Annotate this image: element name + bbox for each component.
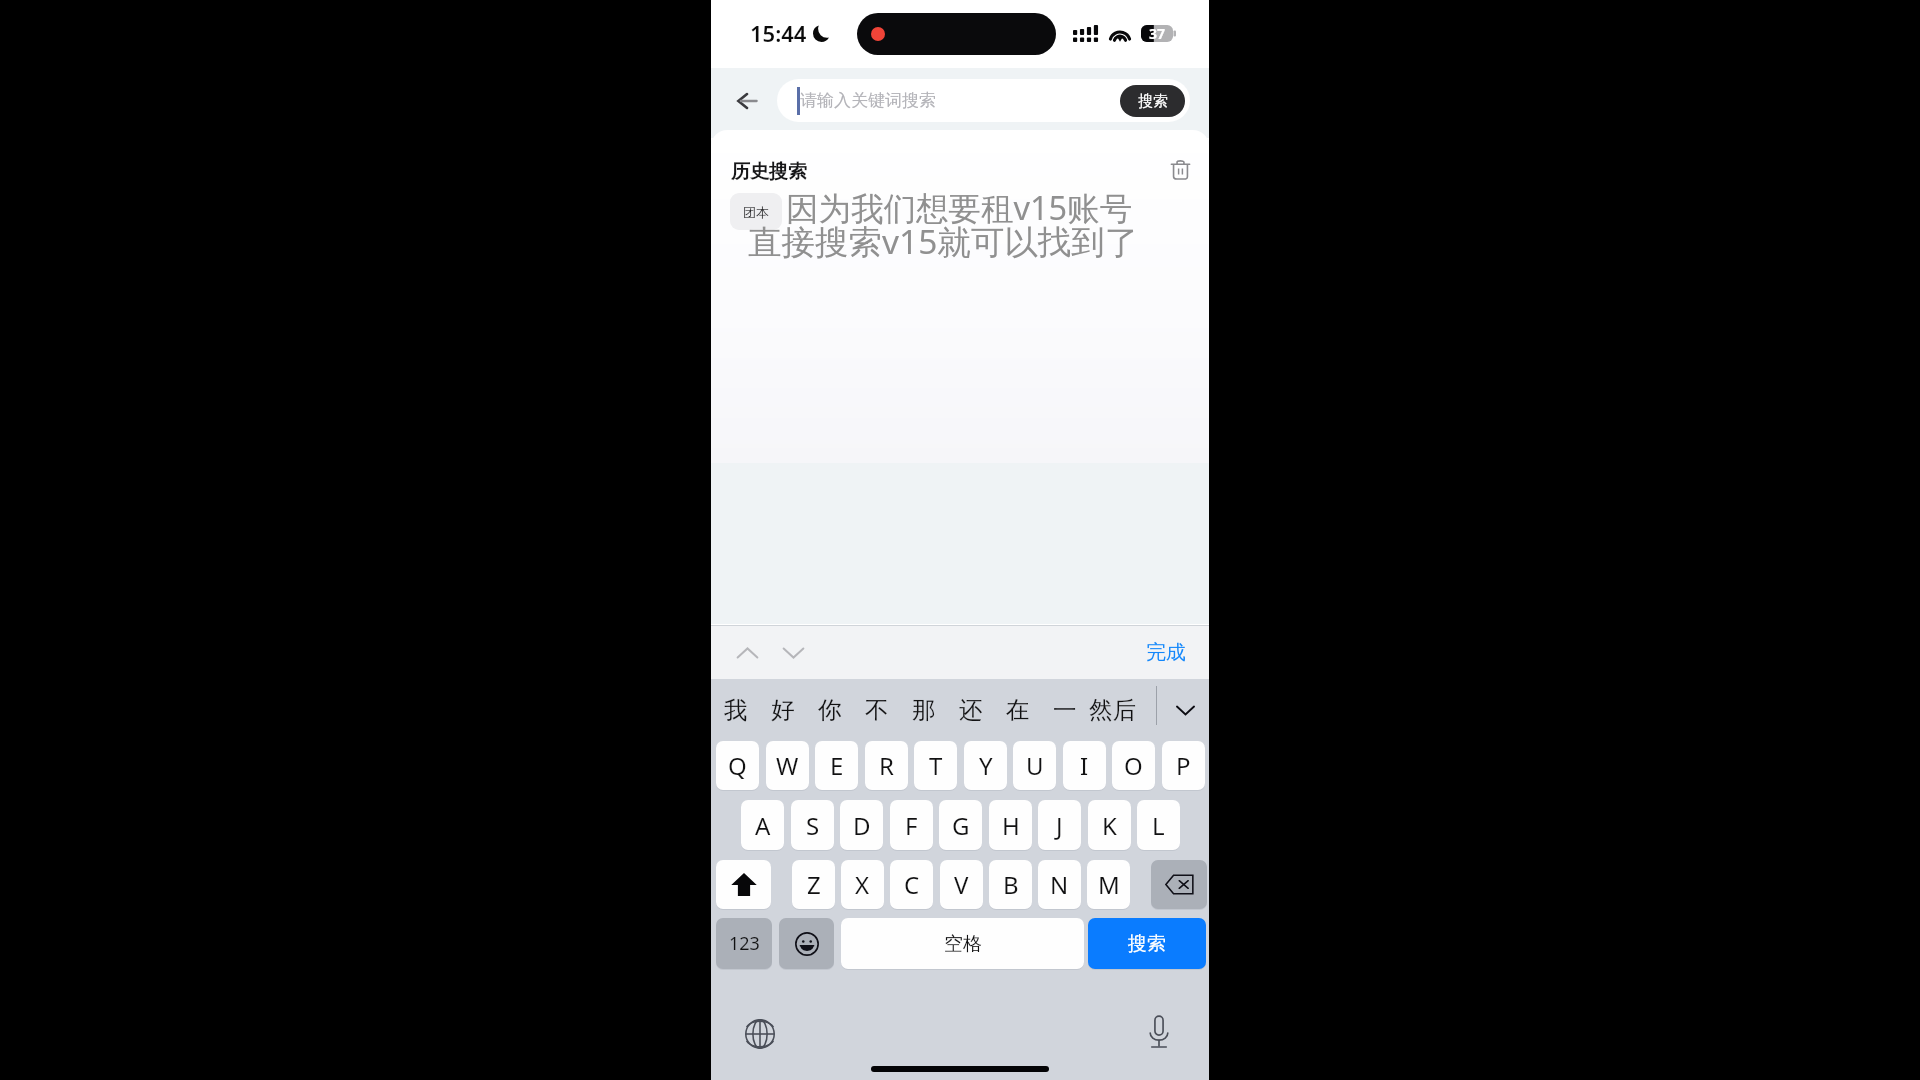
staticText: L — [1152, 809, 1165, 842]
staticText: 历史搜索 — [731, 160, 807, 184]
button[interactable]: Expand candidates — [1163, 679, 1207, 741]
staticText: Y — [979, 749, 993, 782]
staticText: S — [806, 809, 820, 842]
staticText: 一 — [1053, 695, 1077, 725]
button[interactable]: R — [865, 741, 908, 790]
staticText: 直接搜索v15就可以找到了 — [748, 218, 1139, 264]
button[interactable]: O — [1112, 741, 1155, 790]
button[interactable]: M — [1087, 860, 1130, 909]
button[interactable]: Z — [792, 860, 835, 909]
staticText: K — [1102, 809, 1117, 842]
staticText: X — [855, 868, 870, 901]
staticText: 还 — [959, 695, 983, 725]
button[interactable]: 一 — [1042, 679, 1088, 741]
button[interactable]: G — [939, 800, 982, 850]
button[interactable]: B — [989, 860, 1032, 909]
staticText: 那 — [912, 695, 936, 725]
button[interactable]: 那 — [901, 679, 947, 741]
staticText: D — [853, 809, 871, 842]
staticText: R — [879, 749, 894, 782]
button[interactable]: U — [1013, 741, 1056, 790]
button[interactable]: 我 — [713, 679, 759, 741]
button[interactable]: F — [890, 800, 933, 850]
button[interactable]: X — [841, 860, 884, 909]
button[interactable]: 123 — [716, 918, 772, 969]
button[interactable]: N — [1038, 860, 1081, 909]
staticText: 不 — [865, 695, 889, 725]
button[interactable]: 完成 — [1139, 632, 1193, 672]
staticText: 15:44 — [750, 18, 807, 48]
staticText: J — [1056, 809, 1063, 842]
button[interactable]: V — [940, 860, 983, 909]
button[interactable]: Shift — [716, 860, 771, 909]
button[interactable]: S — [791, 800, 834, 850]
staticText: 123 — [729, 931, 760, 956]
button[interactable]: H — [989, 800, 1032, 850]
staticText: 然后 — [1089, 695, 1136, 725]
button[interactable]: 不 — [854, 679, 900, 741]
staticText: 搜索 — [1138, 92, 1168, 111]
button[interactable]: 在 — [995, 679, 1041, 741]
button[interactable]: Next field — [771, 634, 816, 671]
button[interactable]: Emoji — [779, 918, 834, 969]
button[interactable]: 然后 — [1083, 679, 1141, 741]
staticText: 好 — [771, 695, 795, 725]
button[interactable]: A — [741, 800, 784, 850]
button[interactable]: T — [914, 741, 957, 790]
staticText: Q — [728, 749, 747, 782]
staticText: Z — [807, 868, 821, 901]
staticText: C — [904, 868, 920, 901]
staticText: W — [776, 749, 799, 782]
staticText: E — [830, 749, 844, 782]
staticText: 在 — [1006, 695, 1030, 725]
staticText: N — [1050, 868, 1069, 901]
button[interactable]: Previous field — [725, 634, 770, 671]
staticText: 搜索 — [1128, 932, 1166, 956]
button[interactable]: W — [766, 741, 809, 790]
button[interactable]: 搜索 — [1120, 85, 1185, 117]
staticText: B — [1003, 868, 1019, 901]
staticText: 我 — [724, 695, 748, 725]
button[interactable]: Back — [727, 80, 769, 122]
staticText: T — [929, 749, 943, 782]
staticText: A — [755, 809, 771, 842]
button[interactable]: E — [815, 741, 858, 790]
button[interactable]: J — [1038, 800, 1081, 850]
button[interactable]: 你 — [807, 679, 853, 741]
button[interactable]: 好 — [760, 679, 806, 741]
button[interactable]: 团本 — [730, 193, 782, 230]
staticText: M — [1098, 868, 1120, 901]
button[interactable]: 还 — [948, 679, 994, 741]
staticText: I — [1080, 749, 1089, 782]
staticText: 请输入关键词搜索 — [800, 90, 936, 111]
staticText: H — [1002, 809, 1020, 842]
button[interactable]: 空格 — [841, 918, 1084, 969]
staticText: 因为我们想要租v15账号 — [786, 185, 1133, 229]
button[interactable]: 请输入关键词搜索 — [777, 79, 1190, 122]
staticText: 团本 — [743, 204, 769, 220]
button[interactable]: I — [1063, 741, 1106, 790]
button[interactable]: Clear history — [1162, 152, 1198, 188]
button[interactable]: 搜索 — [1088, 918, 1206, 969]
button[interactable]: Y — [964, 741, 1007, 790]
button[interactable]: L — [1137, 800, 1180, 850]
staticText: 空格 — [944, 932, 982, 956]
button[interactable]: D — [840, 800, 883, 850]
button[interactable]: K — [1088, 800, 1131, 850]
staticText: O — [1124, 749, 1143, 782]
staticText: V — [954, 868, 969, 901]
button[interactable]: Q — [716, 741, 759, 790]
staticText: 37 — [1149, 24, 1166, 43]
button[interactable]: Dictate — [1141, 1014, 1177, 1050]
staticText: U — [1026, 749, 1044, 782]
staticText: G — [952, 809, 970, 842]
staticText: P — [1176, 749, 1191, 782]
staticText: 完成 — [1146, 640, 1186, 665]
button[interactable]: C — [890, 860, 933, 909]
staticText: F — [905, 809, 918, 842]
button[interactable]: P — [1162, 741, 1205, 790]
button[interactable]: Delete — [1151, 860, 1207, 909]
button[interactable]: Switch keyboard — [742, 1016, 778, 1052]
staticText: 你 — [818, 695, 842, 725]
